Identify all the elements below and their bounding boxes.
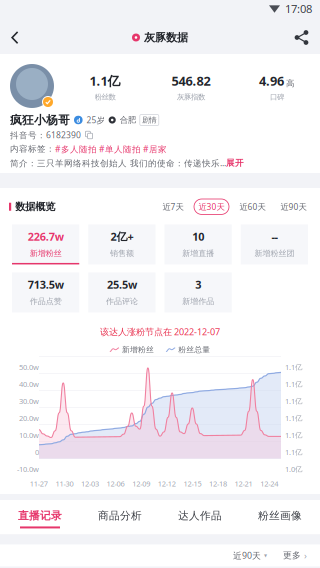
staticText: 12-03 <box>81 478 99 489</box>
staticText: 数据概览 <box>15 200 55 213</box>
staticText: 12-06 <box>107 478 125 489</box>
staticText: 1.1亿 <box>285 379 302 389</box>
button[interactable]: 直播记录 <box>0 500 80 534</box>
staticText: 10 <box>192 229 204 244</box>
staticText: 直播记录 <box>18 509 62 522</box>
staticText: 226.7w <box>28 229 64 244</box>
button[interactable]: 3 <box>164 272 232 312</box>
staticText: 合肥 <box>120 115 136 125</box>
staticText: 12-15 <box>183 478 201 489</box>
staticText: 713.5w <box>28 277 64 292</box>
staticText: #多人随拍 #单人随拍 #居家 <box>55 143 167 155</box>
staticText: 12-24 <box>260 478 278 489</box>
staticText: 17:08 <box>285 1 312 16</box>
staticText: 该达人涨粉节点在 2022-12-07 <box>100 325 220 338</box>
staticText: ▾ <box>264 552 267 559</box>
staticText: 新增粉丝团 <box>254 248 294 258</box>
staticText: 2亿+ <box>110 229 133 244</box>
staticText: 近90天 <box>233 549 261 561</box>
staticText: 更多 <box>283 550 301 561</box>
staticText: 高 <box>286 78 295 89</box>
staticText: 疯狂小杨哥 <box>10 113 70 127</box>
button[interactable]: 粉丝画像 <box>240 500 320 534</box>
staticText: 口碑 <box>270 92 284 102</box>
staticText: 25.5w <box>107 277 137 292</box>
staticText: 销售额 <box>110 248 134 258</box>
button[interactable]: -- <box>241 224 308 264</box>
button[interactable]: 2亿+ <box>88 224 155 264</box>
staticText: 新增直播 <box>182 248 214 258</box>
staticText: 1.1亿 <box>285 413 302 423</box>
staticText: 1.1亿 <box>285 396 302 406</box>
button[interactable]: 10 <box>164 224 232 264</box>
staticText: 作品评论 <box>106 296 138 306</box>
staticText: 12-12 <box>158 478 176 489</box>
button[interactable]: 25.5w <box>88 272 155 312</box>
staticText: 展开 <box>226 158 244 168</box>
staticText: 新增作品 <box>182 296 214 306</box>
staticText: 作品点赞 <box>30 296 62 306</box>
button[interactable]: 713.5w <box>12 272 79 312</box>
button[interactable]: Back <box>2 24 28 51</box>
staticText: 30.0w <box>19 396 39 406</box>
button[interactable]: 近7天 <box>155 199 191 214</box>
staticText: 粉丝数 <box>94 92 115 102</box>
staticText: 商品分析 <box>98 509 142 522</box>
staticText: 11-27 <box>30 478 48 489</box>
staticText: 近90天 <box>280 201 306 212</box>
staticText: 近30天 <box>198 201 224 212</box>
button[interactable]: 近90天 <box>228 545 272 565</box>
button[interactable]: 近30天 <box>191 199 232 214</box>
staticText: 剧情 <box>142 115 156 125</box>
staticText: 1.0亿 <box>285 464 302 474</box>
staticText: 1.1亿 <box>285 362 302 372</box>
staticText: 10.0w <box>19 430 39 440</box>
button[interactable]: 226.7w <box>12 224 79 264</box>
staticText: 抖音号：6182390 <box>10 129 81 141</box>
staticText: 12-09 <box>132 478 150 489</box>
staticText: 25岁 <box>87 114 105 126</box>
staticText: 3 <box>195 277 201 292</box>
staticText: 灰豚指数 <box>177 92 205 102</box>
staticText: 灰豚数据 <box>144 30 188 44</box>
staticText: 40.0w <box>19 379 39 389</box>
staticText: -- <box>271 229 277 244</box>
button[interactable]: 近90天 <box>273 199 314 214</box>
staticText: 新增粉丝 <box>30 248 62 258</box>
staticText: 1.1亿 <box>285 447 302 457</box>
staticText: 新增粉丝 <box>122 345 154 354</box>
staticText: 4.96 <box>259 72 284 89</box>
staticText: › <box>304 549 307 562</box>
button[interactable]: 商品分析 <box>80 500 160 534</box>
staticText: -10.0w <box>17 464 39 474</box>
staticText: 11-30 <box>55 478 73 489</box>
button[interactable]: 达人作品 <box>160 500 240 534</box>
staticText: 近60天 <box>239 201 265 212</box>
staticText: 粉丝画像 <box>258 509 302 522</box>
staticText: 12-18 <box>209 478 227 489</box>
staticText: 1.1亿 <box>285 430 302 440</box>
staticText: 20.0w <box>19 413 39 423</box>
staticText: 0 <box>35 447 39 457</box>
staticText: 12-21 <box>235 478 253 489</box>
staticText: 简介：三只羊网络科技创始人 我们的使命：传递快乐... <box>10 157 226 169</box>
button[interactable]: 更多 <box>278 545 312 566</box>
staticText: 1.1亿 <box>89 72 120 89</box>
staticText: 546.82 <box>171 72 210 89</box>
staticText: 粉丝总量 <box>178 345 210 354</box>
staticText: 内容标签： <box>10 144 55 154</box>
button[interactable]: Share <box>285 23 318 51</box>
button[interactable]: 近60天 <box>232 199 273 214</box>
staticText: 50.0w <box>19 362 39 372</box>
staticText: 达人作品 <box>178 509 222 522</box>
staticText: 近7天 <box>162 201 183 212</box>
button[interactable]: 展开 <box>226 158 244 168</box>
